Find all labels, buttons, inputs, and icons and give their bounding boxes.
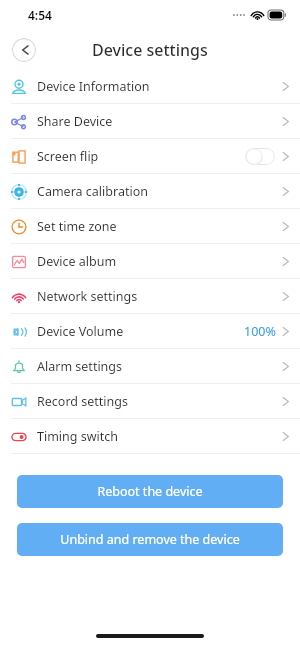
button[interactable]: Back (12, 38, 36, 62)
button[interactable]: Timing switch (0, 419, 300, 454)
button[interactable]: Screen flip (0, 139, 300, 174)
button[interactable]: Device Volume (0, 314, 300, 349)
staticText: 4:54 (28, 7, 52, 23)
staticText: 100% (244, 323, 276, 340)
button[interactable]: Camera calibration (0, 174, 300, 209)
staticText: Device settings (92, 39, 208, 61)
button[interactable]: Reboot the device (17, 475, 283, 508)
staticText: Device Information (37, 78, 150, 95)
button[interactable]: Unbind and remove the device (17, 523, 283, 556)
staticText: Share Device (37, 113, 113, 130)
button[interactable]: Network settings (0, 279, 300, 314)
staticText: Camera calibration (37, 183, 148, 200)
button[interactable]: Set time zone (0, 209, 300, 244)
button[interactable]: Alarm settings (0, 349, 300, 384)
button[interactable]: Device album (0, 244, 300, 279)
staticText: Screen flip (37, 148, 99, 165)
button[interactable]: Device Information (0, 69, 300, 104)
staticText: Device Volume (37, 323, 124, 340)
staticText: Record settings (37, 393, 128, 410)
staticText: Reboot the device (97, 483, 203, 500)
staticText: Network settings (37, 288, 138, 305)
staticText: Alarm settings (37, 358, 123, 375)
button[interactable]: Share Device (0, 104, 300, 139)
staticText: Set time zone (37, 218, 117, 235)
button[interactable]: Screen flip toggle (245, 148, 275, 165)
staticText: Timing switch (37, 428, 119, 445)
button[interactable]: Record settings (0, 384, 300, 419)
staticText: Unbind and remove the device (60, 531, 240, 548)
staticText: Device album (37, 253, 117, 270)
